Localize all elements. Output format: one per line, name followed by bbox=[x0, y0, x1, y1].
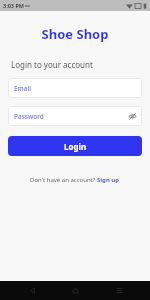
staticText: Password bbox=[14, 112, 44, 121]
staticText: Email bbox=[14, 84, 32, 93]
staticText: Login to your account bbox=[11, 59, 93, 70]
staticText: 3:03 PM bbox=[3, 2, 25, 9]
staticText: Login bbox=[64, 141, 87, 152]
button[interactable]: Login bbox=[8, 136, 142, 156]
button[interactable]: Recent apps bbox=[107, 281, 131, 300]
button[interactable]: Toggle password visibility bbox=[127, 111, 137, 121]
button[interactable]: Sign up bbox=[97, 176, 120, 184]
staticText: Shoe Shop bbox=[0, 25, 150, 43]
button[interactable]: Back bbox=[20, 281, 44, 300]
staticText: Don't have an account? bbox=[30, 176, 97, 184]
button[interactable]: Home bbox=[63, 281, 87, 300]
staticText: Sign up bbox=[97, 176, 120, 184]
button[interactable]: Password bbox=[8, 106, 142, 126]
button[interactable]: Email bbox=[8, 78, 142, 98]
